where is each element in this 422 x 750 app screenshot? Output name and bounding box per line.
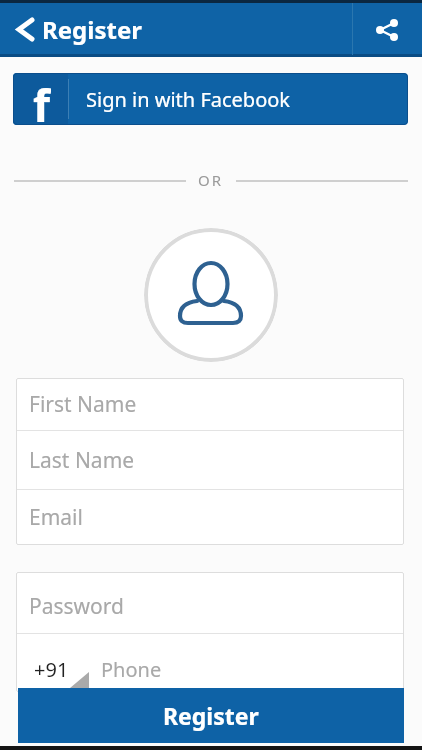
staticText: Last Name	[29, 446, 135, 475]
staticText: Sign in with Facebook	[86, 86, 291, 113]
staticText: f	[33, 75, 51, 125]
staticText: Register	[163, 700, 259, 731]
button[interactable]	[144, 228, 278, 362]
button[interactable]: f	[13, 73, 408, 125]
button[interactable]: Last Name	[16, 431, 404, 489]
staticText: +91	[34, 656, 69, 683]
staticText: Password	[29, 592, 124, 621]
button[interactable]: +91	[16, 634, 404, 692]
button[interactable]: Register	[18, 688, 404, 743]
staticText: First Name	[29, 390, 137, 419]
staticText: Register	[42, 13, 142, 46]
button[interactable]: Email	[16, 490, 404, 545]
staticText: Email	[29, 503, 83, 532]
button[interactable]: Register	[0, 13, 142, 46]
staticText: OR	[198, 170, 224, 190]
button[interactable]: Password	[16, 572, 404, 633]
button[interactable]: First Name	[16, 378, 404, 430]
button[interactable]	[352, 3, 422, 57]
staticText: Phone	[101, 656, 162, 683]
